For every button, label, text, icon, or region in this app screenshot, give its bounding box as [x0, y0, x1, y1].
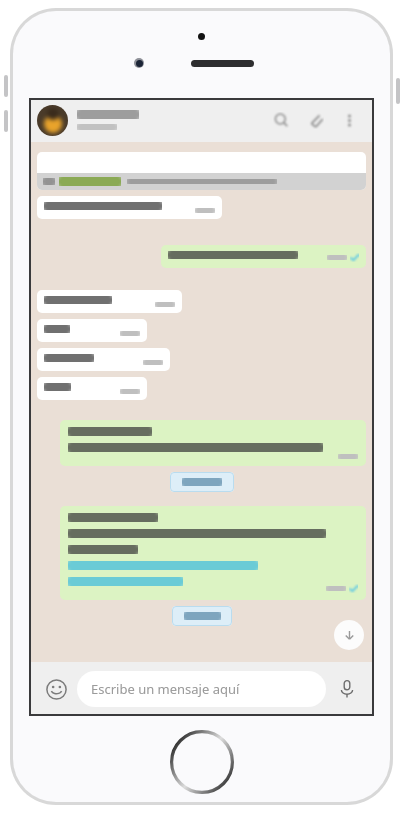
button[interactable]: Scroll to bottom [334, 620, 364, 650]
button[interactable] [37, 377, 147, 400]
button[interactable]: Search [264, 103, 298, 137]
button[interactable] [37, 319, 147, 342]
button[interactable]: Attach [298, 103, 332, 137]
button[interactable]: Contact photo [37, 105, 68, 136]
button[interactable]: More options [332, 103, 366, 137]
button[interactable] [37, 348, 170, 371]
button[interactable] [172, 606, 232, 626]
button[interactable] [37, 152, 366, 190]
button[interactable]: Voice message [330, 672, 364, 706]
button[interactable] [37, 290, 182, 313]
button[interactable] [161, 245, 366, 268]
button[interactable]: Emoji [39, 672, 73, 706]
button[interactable] [60, 420, 366, 466]
button[interactable] [170, 472, 234, 492]
button[interactable]: Escribe un mensaje aquí [77, 671, 326, 707]
button[interactable] [60, 506, 366, 600]
staticText: Escribe un mensaje aquí [91, 680, 240, 698]
button[interactable] [37, 196, 222, 219]
